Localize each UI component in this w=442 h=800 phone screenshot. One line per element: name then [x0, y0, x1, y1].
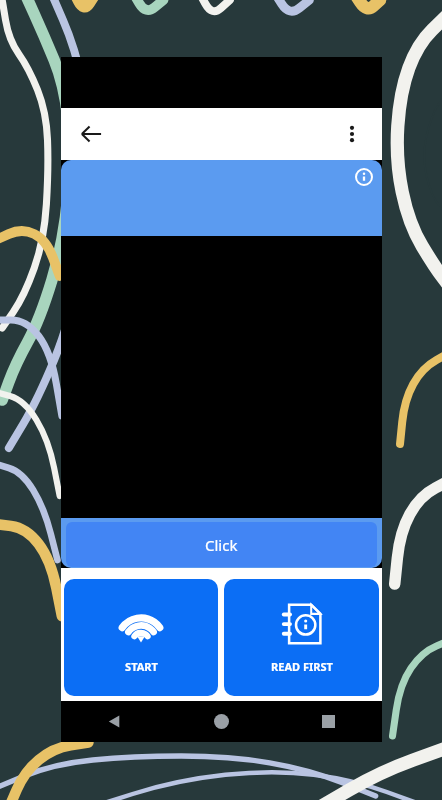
staticText: READ FIRST	[271, 659, 333, 674]
button[interactable]: More options	[330, 112, 374, 156]
button[interactable]: Info	[61, 160, 382, 236]
button[interactable]: Click	[66, 522, 377, 567]
staticText: Click	[205, 535, 238, 555]
button[interactable]: Info	[352, 165, 376, 189]
staticText: START	[125, 659, 158, 674]
button[interactable]: Back	[69, 112, 113, 156]
button[interactable]: Recents	[275, 701, 382, 742]
button[interactable]: Back	[61, 701, 168, 742]
button[interactable]: Home	[168, 701, 275, 742]
button[interactable]: START	[64, 579, 218, 696]
button[interactable]: READ FIRST	[224, 579, 379, 696]
